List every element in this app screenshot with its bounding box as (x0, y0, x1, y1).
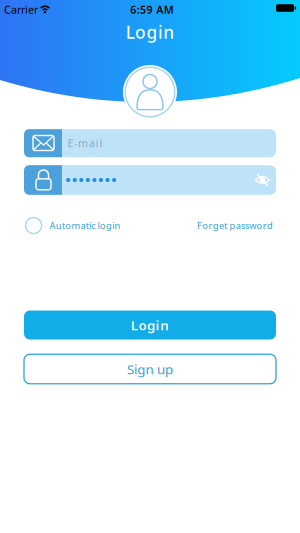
button[interactable]: Forget password (197, 219, 273, 232)
staticText: Login (126, 20, 174, 43)
staticText: 6:59 AM (130, 2, 174, 17)
button[interactable]: Automatic login (26, 217, 120, 233)
staticText: Carrier (4, 2, 38, 17)
button[interactable]: E-mail (24, 129, 276, 157)
button[interactable]: Login (24, 310, 276, 339)
button[interactable]: Password (24, 165, 276, 195)
staticText: Forget password (197, 219, 273, 232)
button[interactable]: Sign up (24, 354, 276, 384)
staticText: E-mail (67, 136, 102, 150)
button[interactable]: Show password (251, 170, 273, 190)
staticText: Sign up (127, 360, 173, 378)
staticText: Automatic login (50, 219, 120, 232)
staticText: Login (131, 316, 169, 334)
